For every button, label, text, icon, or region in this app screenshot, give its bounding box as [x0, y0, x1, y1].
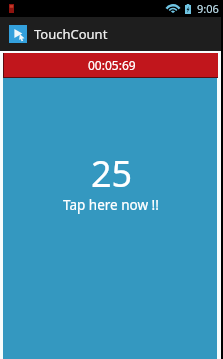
- other: Wi-Fi signal: [167, 4, 179, 13]
- button[interactable]: 00:05:69: [4, 53, 218, 77]
- staticText: 9:06: [197, 1, 219, 16]
- other: TouchCount app icon: [9, 25, 27, 43]
- staticText: Tap here now !!: [63, 196, 159, 214]
- staticText: 00:05:69: [88, 57, 136, 73]
- other: Notification: [9, 4, 14, 13]
- other: Battery charging: [185, 4, 191, 14]
- button[interactable]: TouchCount app icon: [0, 17, 118, 51]
- staticText: TouchCount: [34, 25, 108, 43]
- button[interactable]: 25: [3, 78, 217, 359]
- staticText: 25: [91, 149, 133, 198]
